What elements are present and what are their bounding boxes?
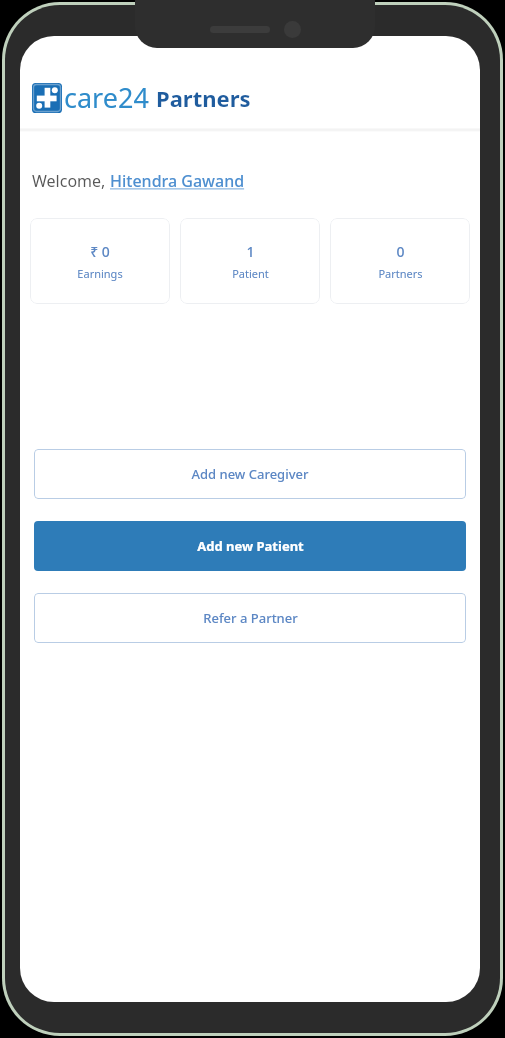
button[interactable]: Refer a Partner — [34, 593, 466, 643]
staticText: care24 — [64, 79, 149, 116]
staticText: Add new Caregiver — [191, 465, 309, 483]
staticText: 0 — [396, 242, 405, 261]
staticText: Partners — [378, 266, 423, 281]
button[interactable]: 1 — [180, 218, 320, 304]
button[interactable]: Welcome, — [32, 170, 245, 192]
staticText: 1 — [246, 242, 255, 261]
staticText: Earnings — [77, 266, 123, 281]
staticText: Welcome, — [32, 170, 110, 192]
staticText: ₹ 0 — [90, 242, 110, 261]
staticText: Patient — [232, 266, 269, 281]
staticText: Partners — [156, 83, 251, 113]
staticText: Add new Patient — [197, 537, 304, 555]
button[interactable]: Add new Patient — [34, 521, 466, 571]
button[interactable]: 0 — [330, 218, 470, 304]
other: care24 logo — [32, 83, 62, 113]
button[interactable]: ₹ 0 — [30, 218, 170, 304]
staticText: Hitendra Gawand — [110, 170, 245, 192]
button[interactable]: care24 logo — [32, 79, 251, 116]
staticText: Refer a Partner — [203, 609, 298, 627]
button[interactable]: Add new Caregiver — [34, 449, 466, 499]
